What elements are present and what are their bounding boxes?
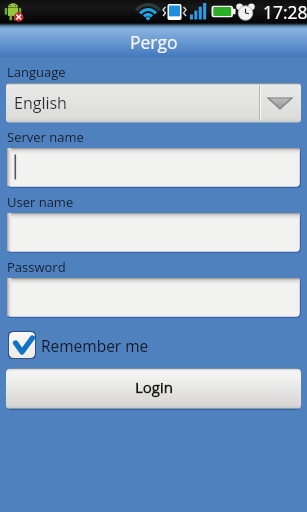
button[interactable] bbox=[6, 212, 301, 253]
button[interactable]: English bbox=[6, 83, 301, 123]
staticText: Language bbox=[7, 63, 66, 81]
other: Remember me bbox=[7, 331, 37, 360]
button[interactable] bbox=[6, 277, 301, 318]
staticText: Password bbox=[7, 258, 66, 276]
staticText: Remember me bbox=[41, 335, 149, 356]
button[interactable]: Remember me bbox=[0, 331, 307, 360]
staticText: Login bbox=[135, 377, 173, 397]
button[interactable] bbox=[6, 147, 301, 188]
staticText: 17:28 bbox=[263, 0, 307, 24]
button[interactable]: Login bbox=[6, 368, 301, 410]
staticText: User name bbox=[7, 193, 74, 211]
staticText: English bbox=[14, 92, 67, 114]
staticText: Server name bbox=[7, 128, 84, 146]
staticText: Pergo bbox=[130, 30, 178, 54]
